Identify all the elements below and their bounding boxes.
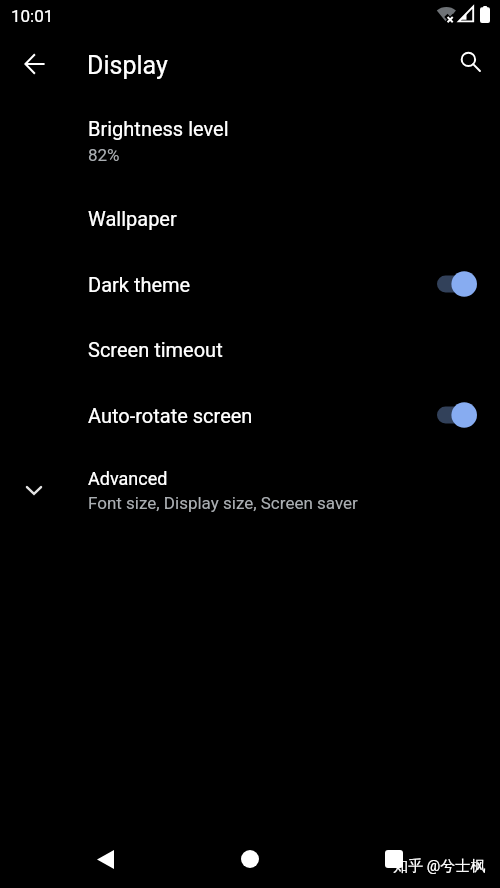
button[interactable]: Recent apps <box>370 835 418 883</box>
staticText: Advanced <box>88 468 168 489</box>
staticText: Screen timeout <box>88 338 223 361</box>
button[interactable]: Back <box>81 835 129 883</box>
staticText: Auto-rotate screen <box>88 404 253 427</box>
button[interactable]: Search <box>446 37 494 85</box>
button[interactable]: Toggle Dark theme <box>437 269 477 299</box>
button[interactable]: Dark theme <box>0 251 500 317</box>
button[interactable]: Auto-rotate screen <box>0 382 500 448</box>
button[interactable]: Navigate up <box>11 40 59 88</box>
staticText: 82% <box>88 145 120 165</box>
button[interactable]: Wallpaper <box>0 186 500 251</box>
staticText: Display <box>87 51 168 80</box>
button[interactable]: Brightness level <box>0 94 500 188</box>
button[interactable]: Screen timeout <box>0 317 500 382</box>
button[interactable]: Home <box>226 835 274 883</box>
staticText: Wallpaper <box>88 207 177 230</box>
button[interactable]: Advanced <box>0 448 500 533</box>
staticText: Font size, Display size, Screen saver <box>88 493 358 513</box>
staticText: Brightness level <box>88 117 229 140</box>
button[interactable]: Toggle Auto-rotate screen <box>437 400 477 430</box>
staticText: 知乎 @兮士枫 <box>393 857 486 876</box>
staticText: Dark theme <box>88 273 191 296</box>
staticText: 10:01 <box>11 6 54 26</box>
